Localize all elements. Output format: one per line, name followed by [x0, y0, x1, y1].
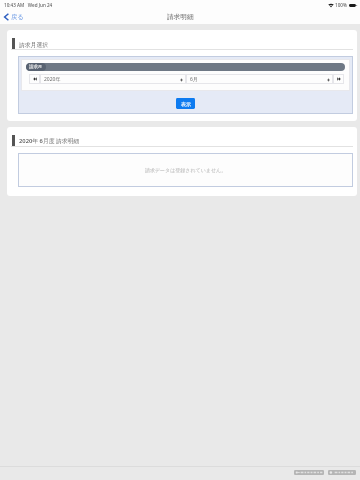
staticText: 10:43 AM Wed Jun 24: [4, 2, 53, 8]
button[interactable]: Next month: [333, 74, 344, 84]
staticText: 100%: [335, 2, 347, 8]
button[interactable]: 6月: [186, 74, 333, 84]
staticText: 2020年: [44, 76, 180, 83]
button[interactable]: Previous year: [29, 74, 40, 84]
staticText: 請求データは登録されていません。: [145, 167, 227, 173]
button[interactable]: 表示: [176, 98, 195, 109]
staticText: 請求月: [29, 64, 43, 70]
staticText: 請求明細: [167, 13, 194, 21]
button[interactable]: パスワードを保存しない: [328, 470, 356, 475]
button[interactable]: パスワードを入力: [294, 470, 324, 475]
button[interactable]: 戻る: [2, 11, 26, 23]
staticText: 表示: [181, 101, 191, 107]
staticText: 2020年 6月度 請求明細: [19, 137, 80, 145]
staticText: 戻る: [11, 13, 24, 21]
staticText: 請求月選択: [19, 41, 48, 48]
staticText: 6月: [190, 76, 327, 83]
button[interactable]: 2020年: [40, 74, 186, 84]
